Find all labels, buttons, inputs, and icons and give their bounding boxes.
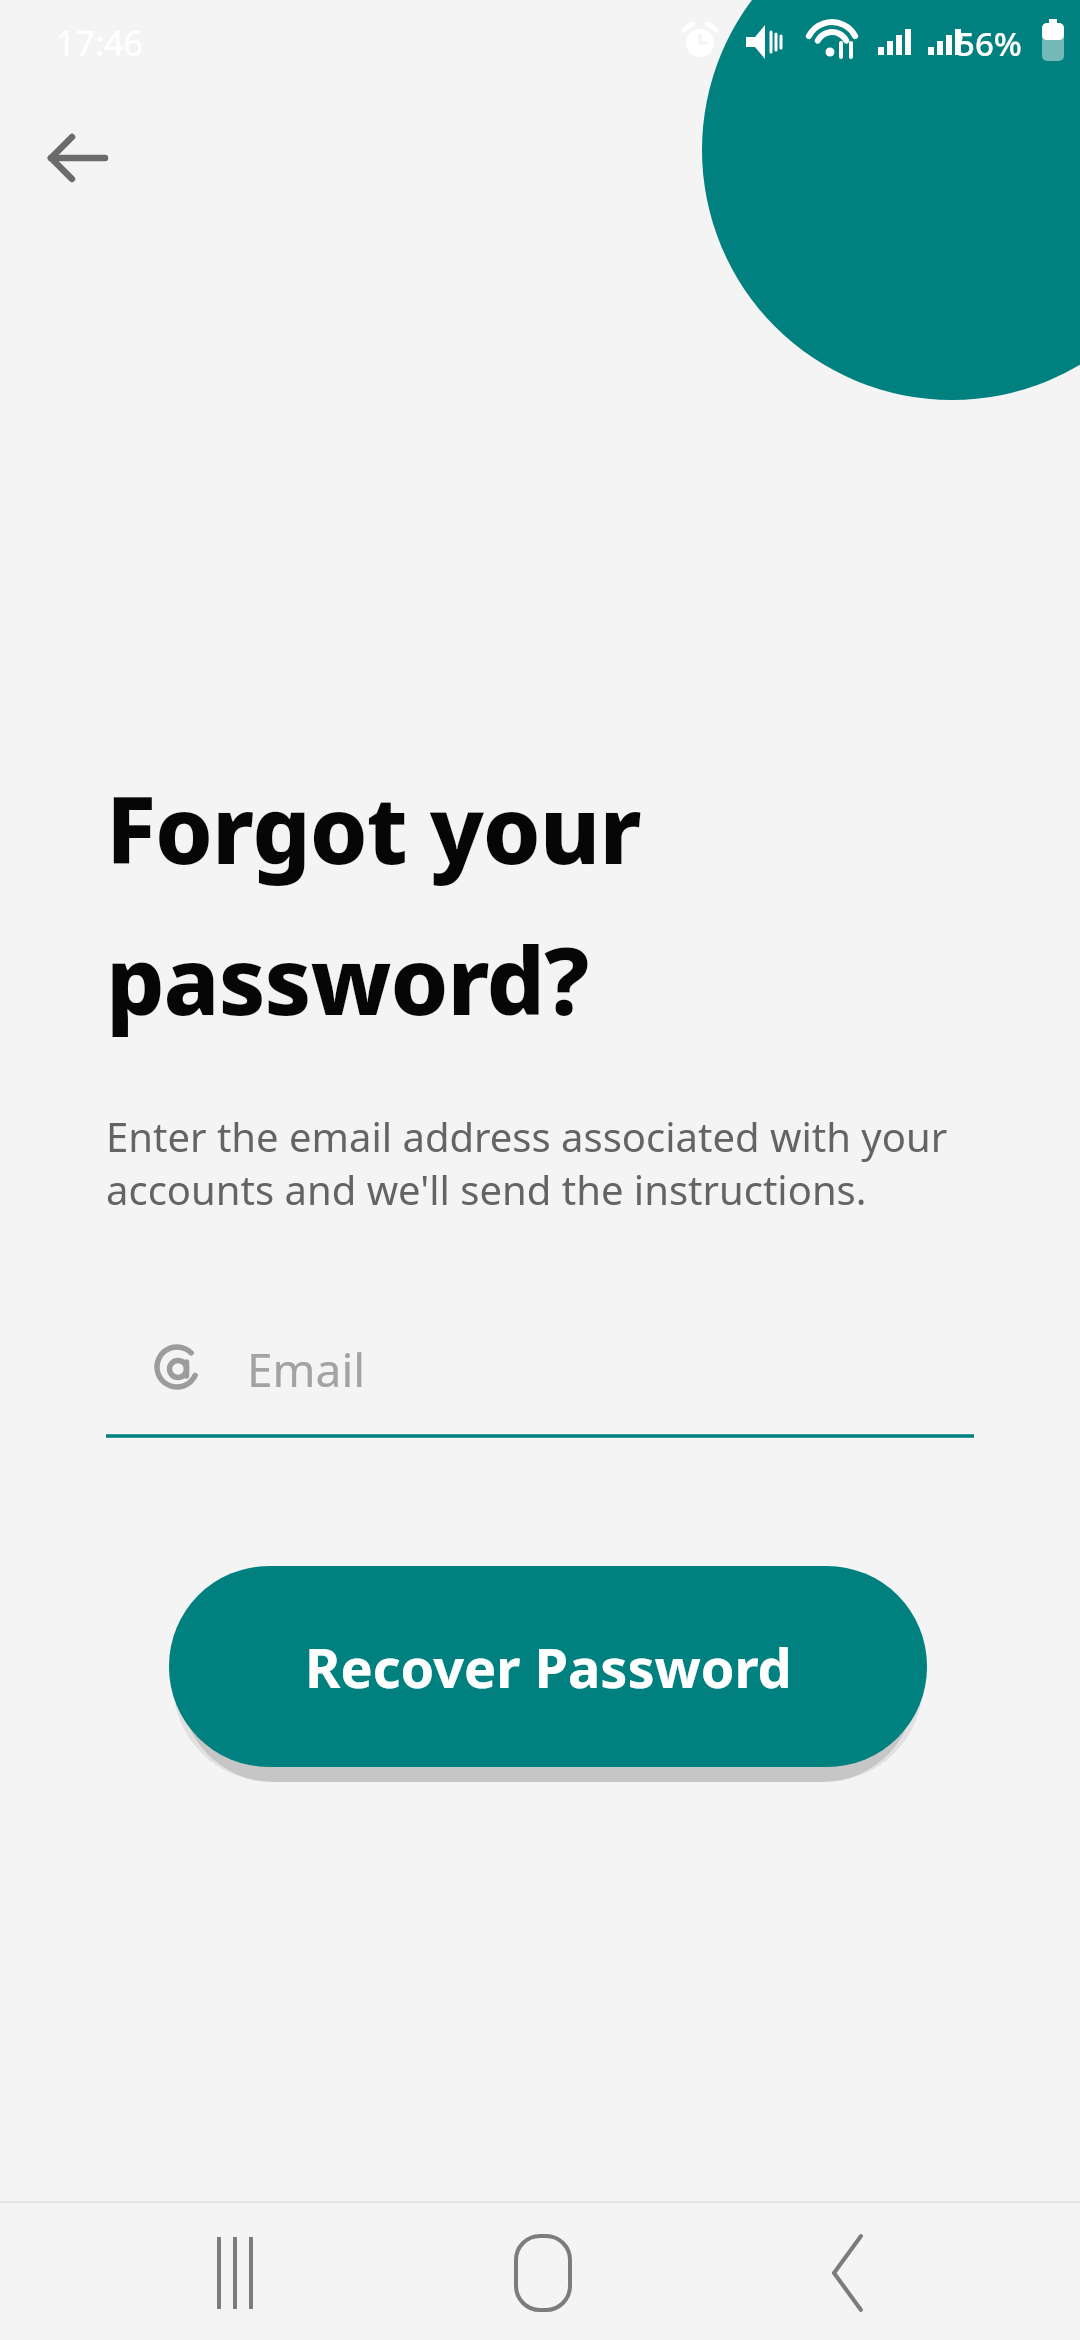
staticText: Recover Password	[305, 1630, 792, 1704]
button[interactable]: Back	[778, 2198, 928, 2340]
button[interactable]: Recent apps	[160, 2198, 310, 2340]
button[interactable]: Email	[106, 1320, 974, 1440]
button[interactable]: Recover Password	[169, 1566, 927, 1767]
staticText: 56%	[956, 21, 1022, 66]
button[interactable]: Back	[22, 102, 134, 214]
staticText: Enter the email address associated with …	[106, 1109, 948, 1217]
button[interactable]: Home	[468, 2198, 618, 2340]
staticText: 17:46	[56, 20, 143, 66]
staticText: Forgot your password?	[106, 766, 641, 1042]
staticText: Email	[247, 1338, 366, 1401]
